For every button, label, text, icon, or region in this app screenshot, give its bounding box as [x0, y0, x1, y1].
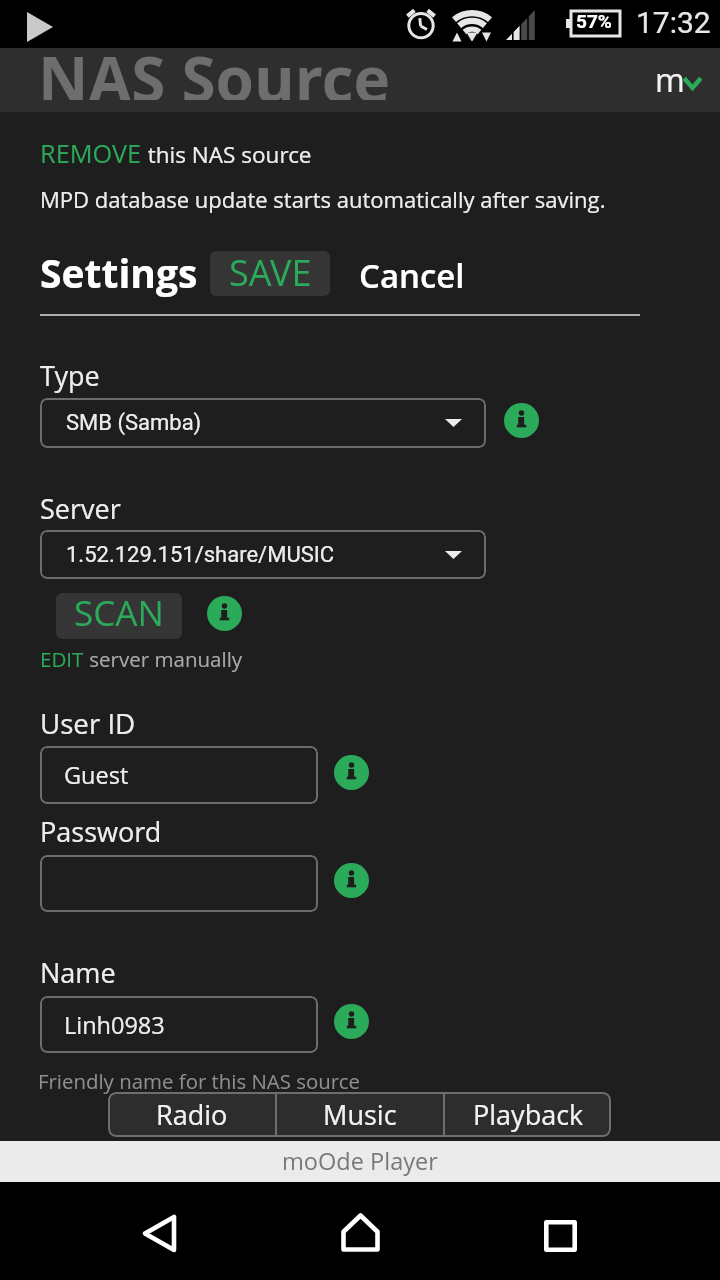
- staticText: Radio: [156, 1096, 228, 1133]
- staticText: EDIT: [40, 645, 84, 673]
- staticText: MPD database update starts automatically…: [40, 184, 606, 214]
- staticText: Settings: [40, 246, 198, 299]
- staticText: SAVE: [229, 251, 312, 293]
- staticText: User ID: [40, 704, 136, 742]
- staticText: 17:32: [636, 5, 711, 40]
- button[interactable]: REMOVE: [40, 136, 142, 170]
- staticText: Name: [40, 954, 116, 991]
- staticText: Friendly name for this NAS source: [38, 1067, 360, 1095]
- button[interactable]: EDIT: [40, 645, 84, 673]
- button[interactable]: Back: [131, 1205, 188, 1262]
- staticText: Linh0983: [64, 1009, 165, 1041]
- button[interactable]: SCAN: [56, 593, 182, 639]
- staticText: NAS Source: [38, 36, 391, 100]
- staticText: Music: [323, 1096, 397, 1133]
- button[interactable]: Info: [504, 403, 539, 438]
- staticText: server manually: [84, 645, 243, 673]
- button[interactable]: Music: [277, 1092, 443, 1137]
- button[interactable]: Cancel: [359, 253, 465, 298]
- button[interactable]: Info: [334, 863, 369, 898]
- button[interactable]: Menu: [650, 48, 708, 98]
- staticText: Guest: [64, 759, 129, 791]
- button[interactable]: Linh0983: [40, 996, 318, 1053]
- button[interactable]: SMB (Samba): [40, 398, 486, 448]
- button[interactable]: Home: [332, 1204, 389, 1261]
- staticText: Password: [40, 813, 162, 850]
- button[interactable]: [40, 855, 318, 912]
- staticText: 1.52.129.151/share/MUSIC: [66, 542, 335, 568]
- button[interactable]: Info: [334, 755, 369, 790]
- staticText: SCAN: [74, 593, 164, 635]
- button[interactable]: Info: [207, 596, 242, 631]
- button[interactable]: Playback: [445, 1092, 611, 1137]
- button[interactable]: Radio: [108, 1092, 275, 1137]
- staticText: Server: [40, 490, 121, 527]
- button[interactable]: SAVE: [210, 251, 330, 296]
- staticText: 57%: [576, 10, 612, 32]
- staticText: Type: [40, 357, 100, 394]
- staticText: Playback: [473, 1096, 584, 1133]
- button[interactable]: Info: [334, 1004, 369, 1039]
- staticText: moOde Player: [282, 1145, 438, 1177]
- staticText: REMOVE: [40, 136, 142, 170]
- button[interactable]: Recents: [532, 1207, 589, 1264]
- staticText: m: [655, 58, 685, 102]
- button[interactable]: 1.52.129.151/share/MUSIC: [40, 530, 486, 579]
- staticText: SMB (Samba): [66, 410, 202, 436]
- button[interactable]: Guest: [40, 746, 318, 804]
- staticText: Cancel: [359, 253, 465, 298]
- staticText: this NAS source: [142, 139, 312, 170]
